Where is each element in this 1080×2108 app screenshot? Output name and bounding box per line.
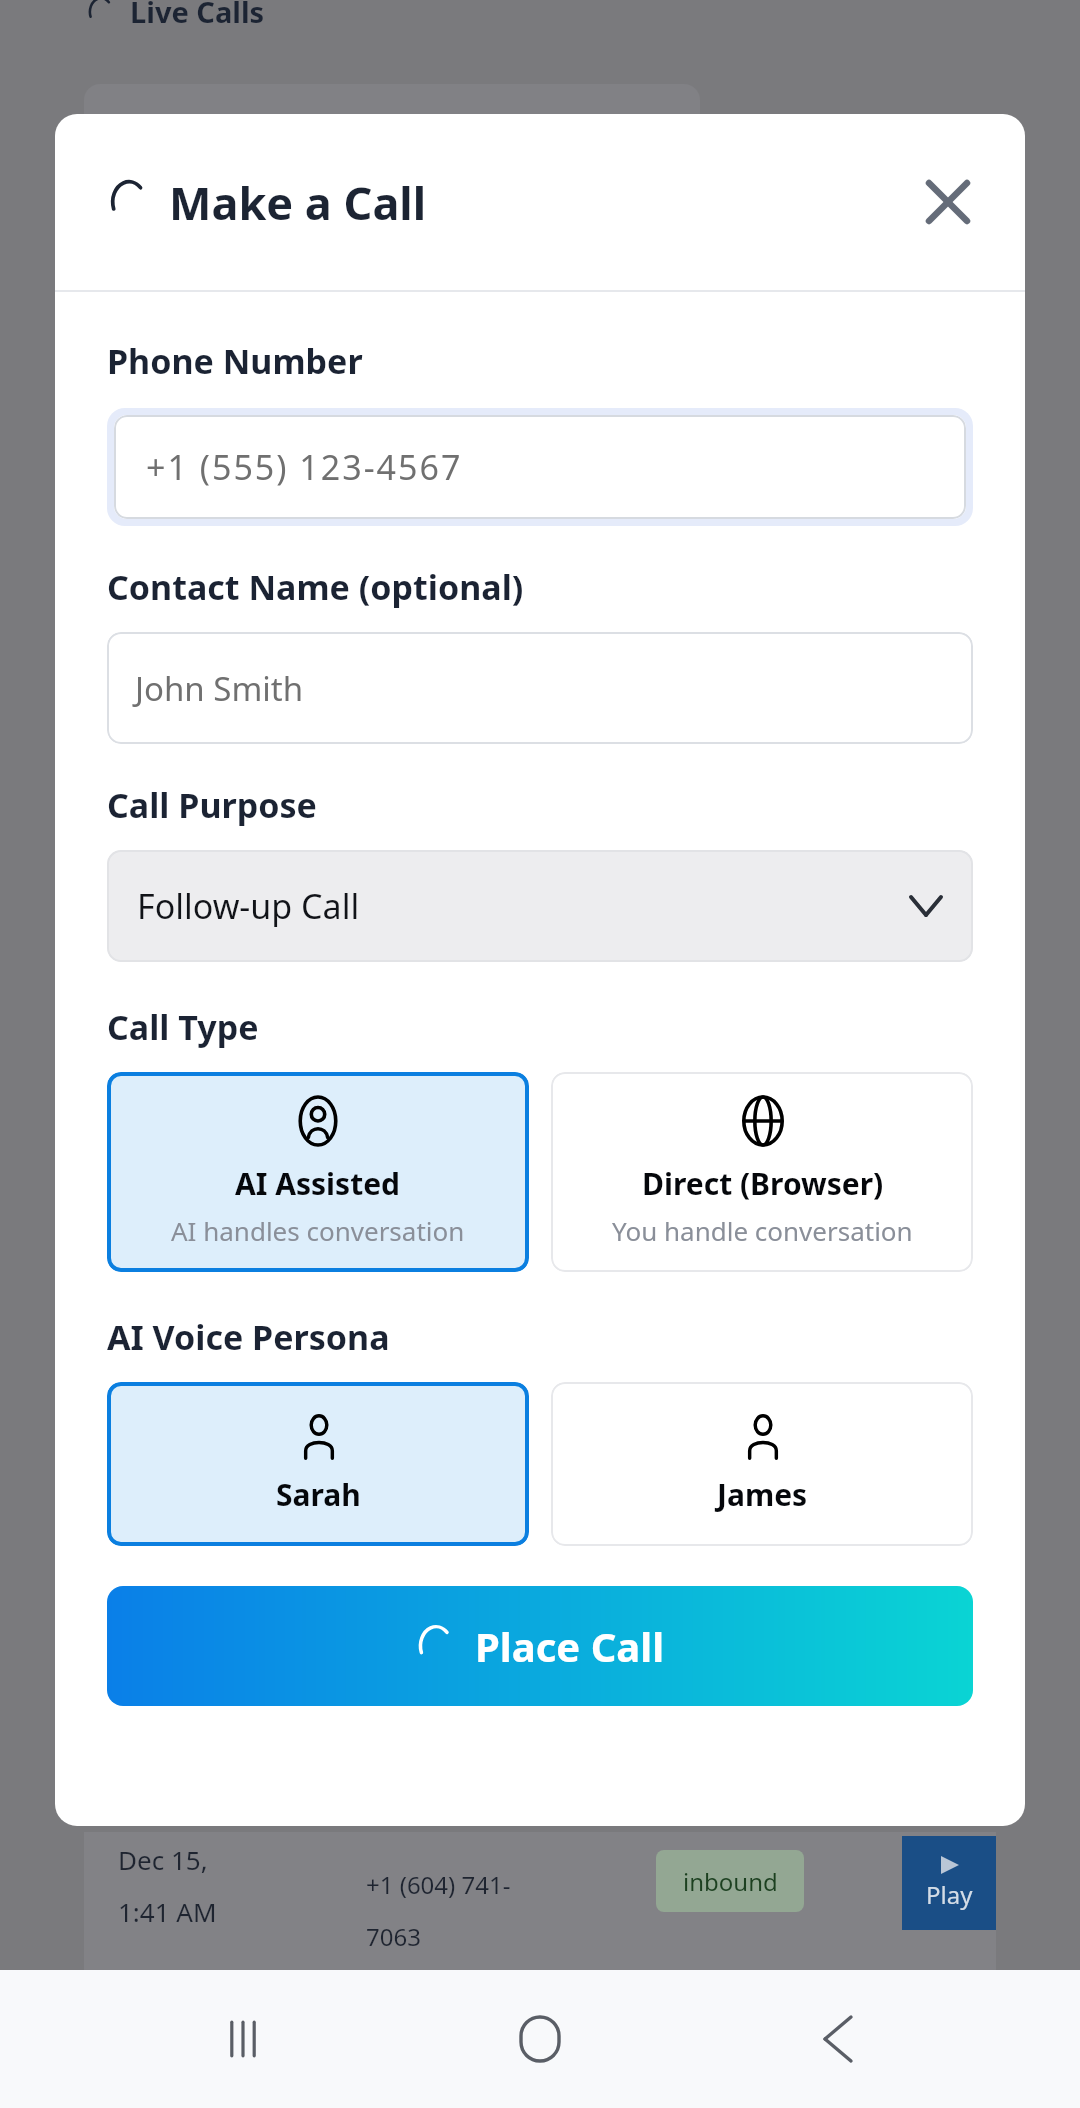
staticText: Phone Number (107, 338, 363, 384)
staticText: James (717, 1474, 808, 1515)
staticText: Call Purpose (107, 782, 317, 828)
button[interactable]: AI Assisted (107, 1072, 529, 1272)
button[interactable]: Close (911, 165, 985, 239)
staticText: Sarah (276, 1474, 361, 1515)
button[interactable]: Follow-up Call (107, 850, 973, 962)
staticText: AI handles conversation (171, 1213, 465, 1248)
staticText: inbound (683, 1865, 778, 1898)
staticText: 1:41 AM (118, 1894, 217, 1929)
button[interactable]: John Smith (107, 632, 973, 744)
staticText: Play (926, 1878, 973, 1911)
staticText: Direct (Browser) (642, 1163, 884, 1204)
button[interactable]: +1 (555) 123-4567 (114, 415, 966, 519)
button[interactable]: Direct (Browser) (551, 1072, 973, 1272)
staticText: AI Assisted (235, 1163, 401, 1204)
button[interactable]: Place Call (107, 1586, 973, 1706)
staticText: Follow-up Call (137, 883, 360, 929)
staticText: Dec 15, (118, 1842, 208, 1877)
staticText: Call Type (107, 1004, 259, 1050)
staticText: You handle conversation (612, 1213, 913, 1248)
staticText: Live Calls (130, 0, 265, 31)
button[interactable]: Sarah (107, 1382, 529, 1546)
staticText: +1 (555) 123-4567 (146, 444, 463, 490)
staticText: Contact Name (optional) (107, 564, 524, 610)
staticText: 7063 (366, 1920, 421, 1953)
staticText: Place Call (475, 1619, 665, 1673)
staticText: +1 (604) 741- (366, 1868, 511, 1901)
button[interactable]: James (551, 1382, 973, 1546)
staticText: Make a Call (169, 172, 427, 233)
staticText: John Smith (135, 666, 304, 711)
button[interactable]: Home (485, 1984, 595, 2094)
button[interactable]: Recents (188, 1984, 298, 2094)
button[interactable]: Back (783, 1984, 893, 2094)
staticText: AI Voice Persona (107, 1314, 390, 1360)
